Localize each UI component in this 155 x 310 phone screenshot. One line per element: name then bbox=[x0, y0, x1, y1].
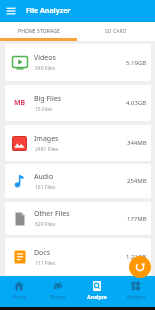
staticText: Docs bbox=[34, 248, 51, 258]
button[interactable]: Images bbox=[5, 125, 151, 161]
staticText: 540 Files bbox=[35, 65, 56, 72]
button[interactable]: Other Files bbox=[5, 202, 151, 235]
staticText: 254MB bbox=[127, 177, 147, 185]
staticText: 1.21GB bbox=[126, 253, 147, 261]
button[interactable]: Widgets bbox=[116, 276, 155, 307]
staticText: Images bbox=[34, 134, 59, 144]
staticText: 629 Files bbox=[35, 221, 56, 228]
staticText: Wizard bbox=[49, 294, 66, 301]
button[interactable] bbox=[129, 256, 151, 278]
button[interactable]: Home bbox=[0, 276, 38, 307]
staticText: 15 Files bbox=[35, 106, 53, 113]
button[interactable]: PHONE STORAGE bbox=[0, 22, 77, 41]
staticText: 344MB bbox=[127, 139, 147, 147]
button[interactable]: Wizard bbox=[38, 276, 77, 307]
staticText: 111 Files bbox=[35, 260, 56, 267]
staticText: Audio bbox=[34, 172, 54, 182]
button[interactable]: MB bbox=[5, 85, 151, 121]
staticText: PHONE STORAGE bbox=[18, 28, 60, 35]
staticText: Analyze bbox=[87, 294, 107, 301]
staticText: Widgets bbox=[126, 294, 146, 301]
button[interactable]: Docs bbox=[5, 238, 151, 276]
staticText: 5.19GB bbox=[126, 59, 147, 67]
button[interactable]: Videos bbox=[5, 44, 151, 81]
staticText: MB bbox=[14, 98, 26, 108]
staticText: SD CARD bbox=[105, 28, 127, 35]
staticText: 2481 Files bbox=[35, 146, 59, 153]
staticText: Other Files bbox=[34, 209, 70, 219]
staticText: File Analyzer bbox=[26, 6, 71, 16]
staticText: 4.03GB bbox=[126, 99, 147, 107]
staticText: 177MB bbox=[127, 215, 147, 223]
button[interactable] bbox=[0, 0, 22, 22]
button[interactable]: Analyze bbox=[77, 276, 116, 307]
staticText: Videos bbox=[34, 53, 56, 63]
button[interactable]: SD CARD bbox=[77, 22, 155, 41]
staticText: Big Files bbox=[34, 94, 62, 104]
button[interactable]: Audio bbox=[5, 164, 151, 198]
staticText: 161 Files bbox=[35, 184, 56, 191]
staticText: Home bbox=[12, 294, 27, 301]
